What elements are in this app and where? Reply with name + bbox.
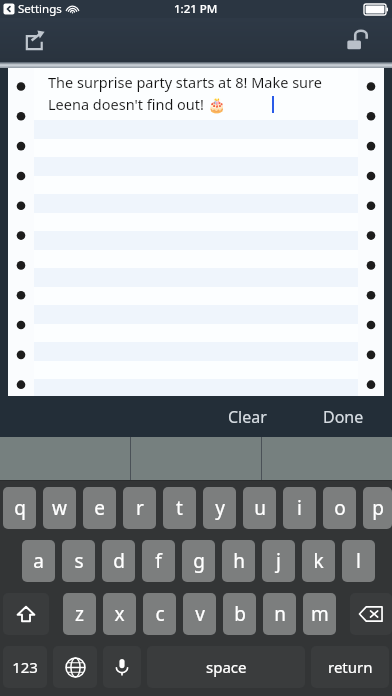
staticText: c [155,601,165,627]
staticText: Settings [18,1,62,17]
button[interactable]: a [22,540,55,582]
button[interactable]: Share [18,23,52,57]
button[interactable]: j [262,540,295,582]
button[interactable]: e [83,487,116,529]
button[interactable]: c [143,593,176,635]
button[interactable]: Shift [3,593,49,635]
button[interactable]: Done [309,398,378,436]
staticText: s [74,548,84,574]
staticText: g [193,548,205,574]
button[interactable]: space [147,646,305,688]
staticText: Clear [228,406,267,428]
staticText: l [356,548,361,574]
button[interactable]: o [323,487,356,529]
button[interactable]: y [203,487,236,529]
staticText: j [276,548,281,574]
staticText: h [233,548,245,574]
button[interactable]: n [263,593,296,635]
staticText: r [136,495,144,521]
staticText: d [113,548,125,574]
staticText: space [206,657,247,677]
button[interactable]: b [223,593,256,635]
staticText: 123 [12,657,38,677]
button[interactable]: h [222,540,255,582]
button[interactable]: Unlock [340,23,374,57]
staticText: e [94,495,105,521]
button[interactable]: f [142,540,175,582]
button[interactable]: q [3,487,36,529]
staticText: i [297,495,302,521]
staticText: x [114,601,125,627]
button[interactable]: v [183,593,216,635]
staticText: f [155,548,162,574]
staticText: t [176,495,183,521]
button[interactable]: return [311,646,389,688]
staticText: z [75,601,84,627]
button[interactable]: m [303,593,336,635]
button[interactable]: Dictation [103,646,141,688]
staticText: The surprise party starts at 8! Make sur… [48,72,322,114]
button[interactable]: Clear [214,398,281,436]
button[interactable]: i [283,487,316,529]
button[interactable]: Backspace [350,593,392,635]
button[interactable]: k [302,540,335,582]
button[interactable]: r [123,487,156,529]
staticText: u [254,495,266,521]
staticText: n [274,601,286,627]
staticText: 1:21 PM [174,1,218,17]
button[interactable]: x [103,593,136,635]
staticText: w [52,495,67,521]
button[interactable]: p [363,487,392,529]
button[interactable]: 123 [3,646,47,688]
staticText: a [33,548,44,574]
staticText: k [313,548,324,574]
button[interactable]: w [43,487,76,529]
button[interactable]: u [243,487,276,529]
button[interactable]: Switch keyboard [53,646,97,688]
staticText: p [372,495,384,521]
staticText: b [234,601,246,627]
staticText: q [14,495,26,521]
staticText: v [195,601,205,627]
button[interactable]: z [63,593,96,635]
button[interactable]: t [163,487,196,529]
staticText: o [334,495,346,521]
button[interactable]: s [62,540,95,582]
button[interactable]: d [102,540,135,582]
staticText: m [311,601,329,627]
staticText: y [215,495,225,521]
staticText: Done [323,406,364,428]
button[interactable]: g [182,540,215,582]
button[interactable]: l [342,540,375,582]
staticText: return [328,657,373,677]
